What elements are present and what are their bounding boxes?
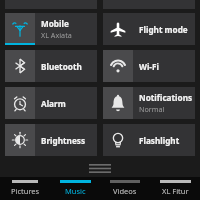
button[interactable]: Wi-Fi xyxy=(103,50,195,82)
staticText: XL Axiata xyxy=(41,30,72,40)
staticText: Wi-Fi xyxy=(139,61,159,72)
staticText: Bluetooth xyxy=(41,61,82,72)
button[interactable]: Drag handle xyxy=(0,160,200,177)
staticText: Videos xyxy=(113,186,137,196)
staticText: Normal xyxy=(139,104,165,114)
staticText: Music xyxy=(65,186,86,196)
staticText: Flashlight xyxy=(139,135,180,146)
staticText: XL Fitur xyxy=(162,186,189,196)
staticText: Pictures xyxy=(11,186,40,196)
staticText: Flight mode xyxy=(139,24,188,35)
button[interactable]: Notifications xyxy=(103,87,195,119)
button[interactable]: Mobile network xyxy=(5,13,97,45)
button[interactable]: Bluetooth xyxy=(5,50,97,82)
staticText: Alarm xyxy=(41,98,66,109)
button[interactable]: Music xyxy=(50,177,100,200)
button[interactable]: Videos xyxy=(100,177,150,200)
button[interactable]: Flashlight xyxy=(103,124,195,156)
button[interactable]: XL Fitur xyxy=(150,177,200,200)
staticText: Brightness xyxy=(41,135,86,146)
button[interactable]: Alarm xyxy=(5,87,97,119)
button[interactable]: Pictures xyxy=(0,177,50,200)
staticText: Notifications xyxy=(139,92,193,103)
staticText: Mobile network xyxy=(41,18,97,29)
button[interactable]: Flight mode xyxy=(103,13,195,45)
button[interactable]: Brightness xyxy=(5,124,97,156)
